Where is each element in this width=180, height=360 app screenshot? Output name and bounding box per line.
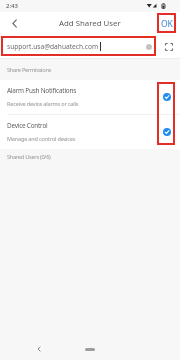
staticText: Device Control (7, 121, 48, 130)
button[interactable]: Back (0, 12, 28, 35)
staticText: 2:43 (6, 2, 18, 10)
staticText: Alarm Push Notifications (7, 86, 77, 95)
button[interactable]: Clear text (141, 39, 157, 55)
button[interactable]: Device Control (0, 115, 180, 149)
button[interactable]: Back (33, 343, 45, 355)
button[interactable]: support.usa@dahuatech.com (7, 42, 99, 51)
staticText: Add Shared User (59, 18, 121, 29)
button[interactable]: OK (161, 12, 173, 35)
staticText: Shared Users (0/6) (7, 153, 51, 161)
button[interactable]: Home (85, 348, 95, 351)
button[interactable]: Alarm Push Notifications (0, 80, 180, 114)
staticText: Share Permissions (7, 66, 52, 74)
staticText: Manage and control devices (7, 135, 76, 142)
staticText: Receive device alarms or calls (7, 100, 79, 107)
staticText: OK (161, 18, 173, 30)
button[interactable]: Scan QR code (161, 39, 177, 55)
